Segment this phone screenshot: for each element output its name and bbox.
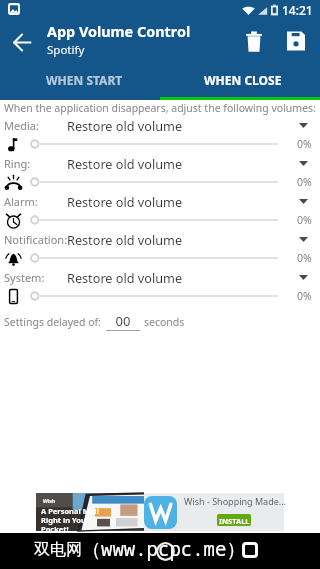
staticText: INSTALL: [219, 516, 250, 526]
staticText: Restore old volume: [67, 231, 183, 248]
staticText: App Volume Control: [47, 22, 191, 42]
staticText: 双电网: [34, 540, 82, 560]
staticText: seconds: [144, 315, 185, 329]
button[interactable]: WHEN START: [0, 64, 160, 100]
staticText: 14:21: [282, 2, 313, 18]
button[interactable]: Back: [2, 22, 42, 62]
button[interactable]: WHEN CLOSE: [160, 64, 320, 100]
button[interactable]: Home: [152, 538, 178, 564]
staticText: Restore old volume: [67, 155, 183, 172]
staticText: 0%: [297, 289, 312, 303]
staticText: 00: [106, 312, 140, 330]
staticText: Restore old volume: [67, 117, 183, 134]
staticText: When the application disappears, adjust …: [4, 101, 316, 115]
staticText: Restore old volume: [67, 193, 183, 210]
button[interactable]: System:: [0, 267, 320, 305]
staticText: Right in Your: [41, 515, 90, 525]
staticText: Notification:: [4, 232, 68, 247]
staticText: System:: [4, 270, 45, 285]
button[interactable]: Notification:: [0, 229, 320, 267]
button[interactable]: Wish: [36, 493, 284, 531]
button[interactable]: Ring:: [0, 153, 320, 191]
staticText: Alarm:: [4, 194, 38, 209]
staticText: Ring:: [4, 156, 31, 171]
staticText: A Personal Mall: [41, 506, 99, 516]
staticText: Spotify: [47, 42, 85, 58]
staticText: Restore old volume: [67, 269, 183, 286]
staticText: Pocket!: [41, 524, 69, 534]
button[interactable]: Save: [275, 19, 317, 63]
button[interactable]: Delete: [233, 19, 275, 63]
staticText: Settings delayed of:: [4, 315, 101, 329]
staticText: Wish: [43, 498, 56, 505]
button[interactable]: Alarm:: [0, 191, 320, 229]
button[interactable]: Media:: [0, 115, 320, 153]
button[interactable]: Recents: [237, 537, 263, 563]
staticText: WHEN START: [46, 72, 123, 88]
staticText: 0%: [297, 213, 312, 227]
staticText: 0%: [297, 137, 312, 151]
staticText: 0%: [297, 251, 312, 265]
staticText: 0%: [297, 175, 312, 189]
staticText: （www.pcpc.me）: [82, 536, 246, 562]
staticText: Wish - Shopping Made...: [184, 495, 286, 507]
staticText: Media:: [4, 118, 39, 133]
staticText: WHEN CLOSE: [204, 72, 282, 88]
